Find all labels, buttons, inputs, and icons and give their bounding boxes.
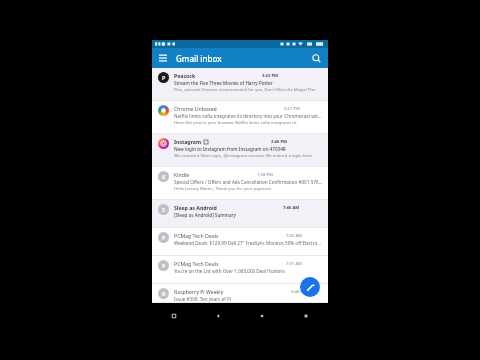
staticText: K <box>162 173 166 180</box>
staticText: We noticed a New Login, @instagram-servi… <box>174 153 313 159</box>
staticText: 1:58 PM <box>257 172 273 178</box>
staticText: Special Offers / Offers and Ads Cancella… <box>174 179 323 185</box>
staticText: Raspberry Pi Weekly <box>174 288 224 295</box>
button[interactable]: Home <box>240 303 284 329</box>
staticText: 7:02 AM <box>286 233 302 239</box>
staticText: [Sleep as Android] Summary <box>174 212 236 218</box>
staticText: Kindle <box>174 171 190 178</box>
staticText: 2:46 PM <box>271 139 288 145</box>
button[interactable]: P <box>152 256 328 284</box>
staticText: P <box>162 262 166 269</box>
staticText: 7:46 AM <box>283 205 300 211</box>
staticText: S <box>162 206 166 213</box>
button[interactable]: Instagram <box>152 134 328 167</box>
button[interactable]: Back <box>196 303 240 329</box>
staticText: Hello Jeremy Martin, Thank you for your … <box>174 186 271 192</box>
staticText: 7:01 AM <box>286 261 302 267</box>
staticText: 3:21 PM <box>284 106 300 112</box>
staticText: Stream the Five Three Movies of Harry Po… <box>174 80 273 86</box>
button[interactable]: P <box>152 228 328 256</box>
staticText: Have this post in your browser Netflix l… <box>174 120 297 126</box>
button[interactable]: Chrome Unboxed <box>152 101 328 134</box>
staticText: 3:23 PM <box>262 73 279 79</box>
staticText: Gmail inbox <box>176 53 309 64</box>
button[interactable]: Compose <box>300 277 320 297</box>
button[interactable]: Recent apps <box>152 303 196 329</box>
staticText: R <box>162 290 166 297</box>
staticText: PCMag Tech Deals <box>174 260 219 267</box>
staticText: 6:40 AM <box>291 289 307 295</box>
staticText: Netflix limits sofia integrates its dire… <box>174 113 323 119</box>
button[interactable]: S <box>152 200 328 228</box>
staticText: Instagram <box>174 138 202 145</box>
button[interactable]: Open navigation menu <box>156 51 170 65</box>
button[interactable]: Search <box>309 51 323 65</box>
staticText: Sleep as Android <box>174 204 217 211</box>
button[interactable]: K <box>152 167 328 200</box>
button[interactable]: R <box>152 284 328 303</box>
staticText: Chrome Unboxed <box>174 105 217 112</box>
staticText: Peacock <box>174 72 196 79</box>
staticText: P <box>162 74 166 81</box>
button[interactable]: P <box>152 68 328 101</box>
staticText: Issue #300: Ten years of Pi <box>174 296 232 302</box>
staticText: Plus, peacock Deowns recommended for you… <box>174 87 316 93</box>
button[interactable]: Overview <box>284 303 328 329</box>
staticText: Weekend Deals: $129.99 Dell 27" FreeSync… <box>174 240 321 246</box>
staticText: PCMag Tech Deals <box>174 232 219 239</box>
staticText: P <box>162 234 166 241</box>
staticText: You're on the List with Over 1,000,000 D… <box>174 268 285 274</box>
staticText: New login to Instagram from Instagram on… <box>174 146 286 152</box>
